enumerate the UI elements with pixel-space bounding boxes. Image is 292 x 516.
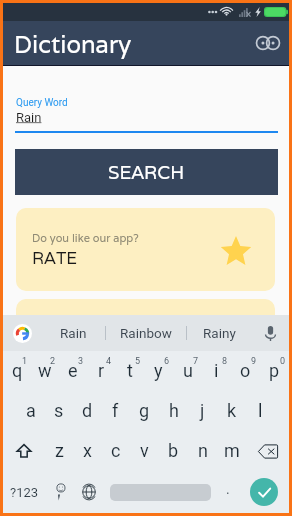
staticText: Rainy bbox=[203, 325, 236, 341]
button[interactable]: k bbox=[217, 391, 246, 431]
button[interactable]: v bbox=[130, 431, 159, 471]
button[interactable]: Do you like our app? bbox=[16, 208, 275, 291]
staticText: l bbox=[258, 400, 263, 421]
button[interactable]: j bbox=[188, 391, 217, 431]
button[interactable]: Rainy bbox=[187, 315, 252, 351]
staticText: j bbox=[200, 400, 205, 421]
staticText: v bbox=[140, 440, 149, 461]
button[interactable]: Backspace bbox=[246, 431, 289, 471]
staticText: o bbox=[240, 360, 251, 381]
button[interactable]: a bbox=[17, 391, 45, 431]
staticText: 5 bbox=[135, 356, 141, 367]
button[interactable]: Rainbow bbox=[106, 315, 186, 351]
staticText: 9 bbox=[251, 356, 257, 367]
button[interactable]: l bbox=[246, 391, 275, 431]
button[interactable]: h bbox=[159, 391, 188, 431]
staticText: k bbox=[227, 400, 237, 421]
button[interactable]: i bbox=[202, 351, 231, 391]
staticText: b bbox=[168, 440, 179, 461]
button[interactable]: Change language bbox=[75, 471, 103, 513]
staticText: y bbox=[154, 360, 163, 381]
staticText: 0 bbox=[280, 356, 286, 367]
button[interactable]: y bbox=[144, 351, 173, 391]
button[interactable]: x bbox=[73, 431, 101, 471]
staticText: z bbox=[55, 440, 64, 461]
staticText: n bbox=[198, 440, 208, 461]
staticText: RATE bbox=[32, 247, 78, 269]
staticText: 1 bbox=[22, 356, 28, 367]
button[interactable]: Google bbox=[3, 315, 41, 351]
button[interactable]: Rain bbox=[41, 315, 105, 351]
staticText: Dictionary bbox=[14, 29, 132, 60]
staticText: Query Word bbox=[16, 97, 68, 109]
staticText: Rainbow bbox=[120, 325, 172, 341]
staticText: h bbox=[169, 400, 179, 421]
button[interactable]: f bbox=[101, 391, 130, 431]
button[interactable]: n bbox=[188, 431, 217, 471]
staticText: 8 bbox=[222, 356, 228, 367]
staticText: r bbox=[98, 360, 105, 381]
staticText: c bbox=[111, 440, 121, 461]
staticText: . bbox=[226, 481, 230, 497]
staticText: m bbox=[224, 440, 240, 461]
staticText: s bbox=[54, 400, 64, 421]
button[interactable]: u bbox=[173, 351, 202, 391]
staticText: i bbox=[214, 360, 219, 381]
button[interactable]: Space bbox=[103, 471, 218, 513]
button[interactable]: s bbox=[45, 391, 73, 431]
staticText: u bbox=[183, 360, 193, 381]
button[interactable]: w bbox=[31, 351, 59, 391]
staticText: 6 bbox=[164, 356, 170, 367]
button[interactable]: q bbox=[3, 351, 31, 391]
button[interactable]: ?123 bbox=[3, 471, 46, 513]
button[interactable]: z bbox=[45, 431, 73, 471]
button[interactable]: b bbox=[159, 431, 188, 471]
button[interactable]: Emoji bbox=[46, 471, 75, 513]
staticText: 4 bbox=[106, 356, 112, 367]
button[interactable]: Voice input bbox=[252, 315, 289, 351]
button[interactable]: . bbox=[218, 471, 238, 513]
button[interactable]: m bbox=[217, 431, 246, 471]
staticText: g bbox=[139, 400, 150, 421]
staticText: 7 bbox=[193, 356, 199, 367]
staticText: a bbox=[26, 400, 36, 421]
button[interactable] bbox=[16, 299, 275, 349]
button[interactable]: e bbox=[59, 351, 87, 391]
button[interactable]: r bbox=[87, 351, 115, 391]
button[interactable]: About bbox=[253, 28, 283, 58]
staticText: d bbox=[82, 400, 93, 421]
staticText: t bbox=[127, 360, 133, 381]
staticText: w bbox=[38, 360, 52, 381]
button[interactable]: Shift bbox=[3, 431, 45, 471]
staticText: f bbox=[112, 400, 119, 421]
staticText: 3 bbox=[78, 356, 84, 367]
staticText: 2 bbox=[50, 356, 56, 367]
button[interactable]: Enter bbox=[238, 471, 289, 513]
staticText: x bbox=[83, 440, 92, 461]
button[interactable]: g bbox=[130, 391, 159, 431]
button[interactable]: t bbox=[115, 351, 144, 391]
staticText: p bbox=[269, 360, 280, 381]
button[interactable]: d bbox=[73, 391, 101, 431]
staticText: SEARCH bbox=[108, 160, 185, 184]
button[interactable]: o bbox=[231, 351, 260, 391]
staticText: Rain bbox=[60, 325, 87, 341]
button[interactable]: c bbox=[101, 431, 130, 471]
button[interactable]: SEARCH bbox=[15, 149, 278, 195]
staticText: Do you like our app? bbox=[32, 231, 139, 245]
staticText: Rain bbox=[16, 110, 42, 125]
staticText: ?123 bbox=[10, 485, 39, 500]
button[interactable]: p bbox=[260, 351, 289, 391]
staticText: q bbox=[12, 360, 23, 381]
staticText: e bbox=[68, 360, 78, 381]
